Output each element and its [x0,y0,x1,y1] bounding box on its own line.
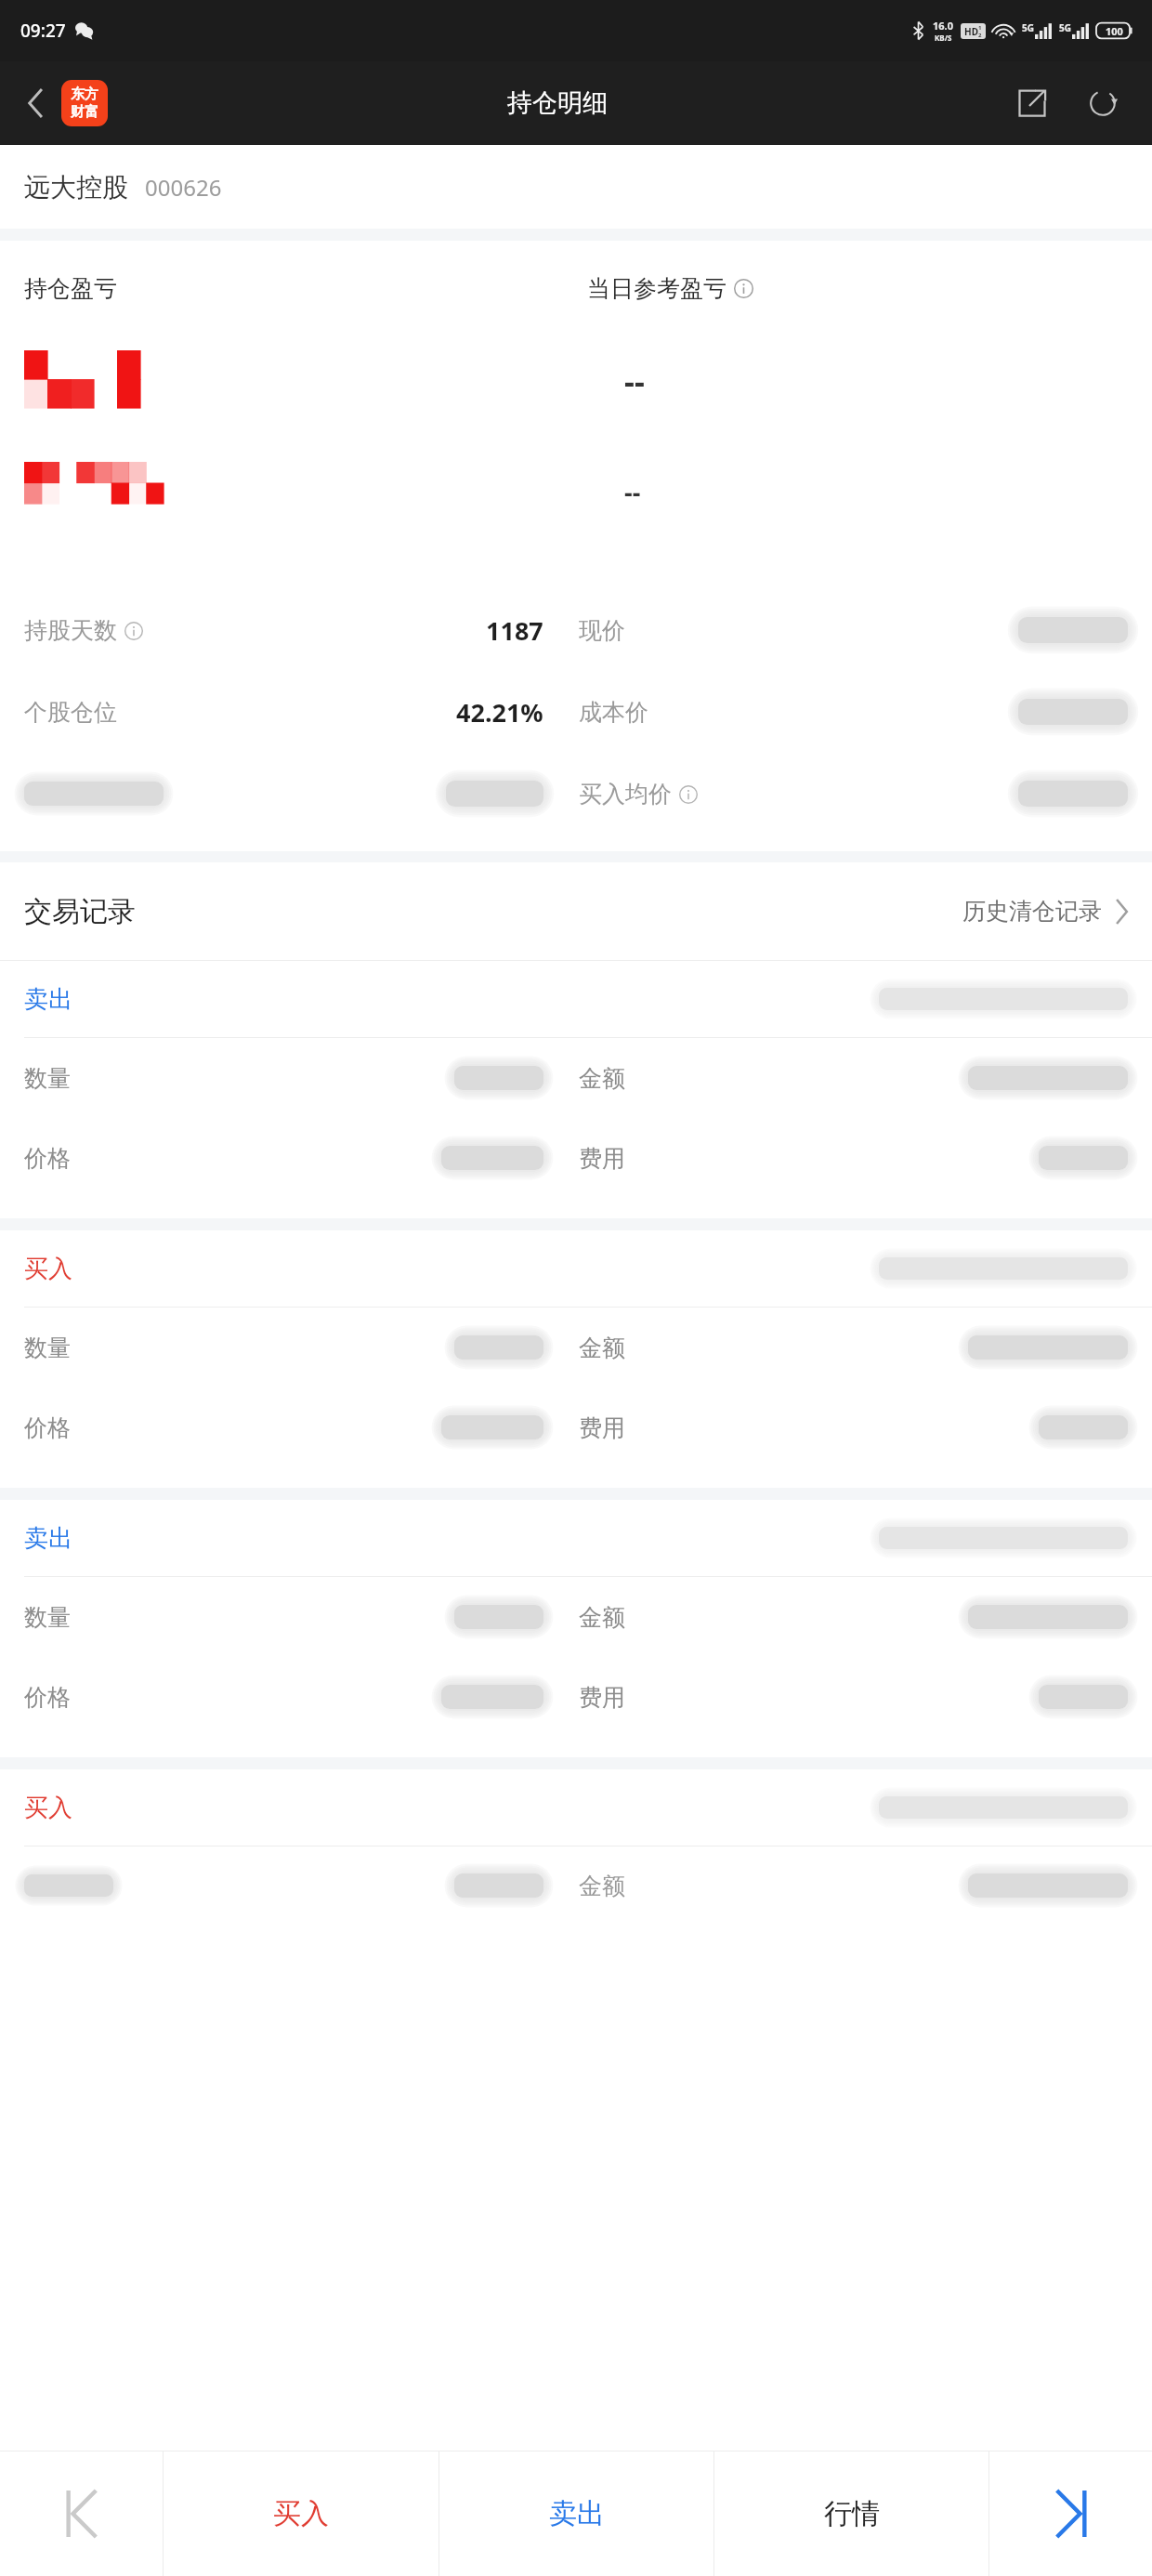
staticText: 金额 [579,1603,625,1632]
staticText: 费用 [579,1413,625,1442]
staticText: 1187 [486,613,543,648]
staticText: 金额 [579,1872,625,1900]
staticText: 买入 [24,1793,72,1823]
staticText: 42.21% [456,695,543,729]
button[interactable]: 行情 [714,2451,988,2576]
button[interactable]: 买入 [164,2451,439,2576]
button[interactable]: Share [1007,78,1057,128]
staticText: 数量 [24,1603,71,1632]
staticText: 历史清仓记录 [962,897,1102,926]
staticText: 价格 [24,1144,71,1173]
button[interactable]: 买入 [0,1230,1152,1500]
staticText: 000626 [145,172,222,203]
staticText: 09:27 [20,19,66,43]
staticText: 5G [1022,21,1034,34]
button[interactable]: Refresh [1078,78,1128,128]
button[interactable]: 买入 [0,1769,1152,1925]
staticText: 数量 [24,1334,71,1362]
button[interactable]: 卖出 [439,2451,713,2576]
staticText: 卖出 [24,984,72,1015]
staticText: 东方 [71,85,98,103]
staticText: 持仓盈亏 [24,274,117,303]
staticText: 现价 [579,616,625,645]
staticText: -- [624,360,645,402]
button[interactable]: 历史清仓记录 [962,897,1128,926]
staticText: 持仓明细 [507,87,608,119]
staticText: 买入 [273,2496,329,2531]
staticText: 费用 [579,1683,625,1712]
button[interactable]: Next stock [989,2451,1152,2576]
staticText: 成本价 [579,698,648,727]
staticText: 100 [1106,24,1123,38]
staticText: 金额 [579,1064,625,1093]
button[interactable]: Back [11,79,59,127]
staticText: 个股仓位 [24,698,117,727]
staticText: 持股天数 [24,616,117,645]
staticText: 当日参考盈亏 [587,274,727,303]
staticText: 交易记录 [24,894,136,929]
button[interactable]: 东方 [61,80,108,126]
staticText: KB/S [935,33,952,43]
staticText: 价格 [24,1413,71,1442]
button[interactable]: 卖出 [0,1500,1152,1769]
button[interactable]: 卖出 [0,961,1152,1230]
staticText: 价格 [24,1683,71,1712]
staticText: 买入 [24,1254,72,1284]
staticText: 财富 [71,103,98,121]
staticText: 金额 [579,1334,625,1362]
staticText: 远大控股 [24,171,128,204]
staticText: 2 [978,32,982,39]
button[interactable]: Previous stock [0,2451,163,2576]
staticText: -- [624,475,641,509]
staticText: 数量 [24,1064,71,1093]
staticText: 卖出 [549,2496,605,2531]
staticText: 费用 [579,1144,625,1173]
staticText: HD [964,25,978,38]
staticText: 卖出 [24,1523,72,1554]
staticText: 5G [1059,21,1071,34]
button[interactable]: 远大控股 [24,145,1152,229]
staticText: 1 [978,24,982,32]
staticText: 16.0 [933,19,953,33]
staticText: 买入均价 [579,780,672,808]
staticText: 行情 [824,2496,880,2531]
